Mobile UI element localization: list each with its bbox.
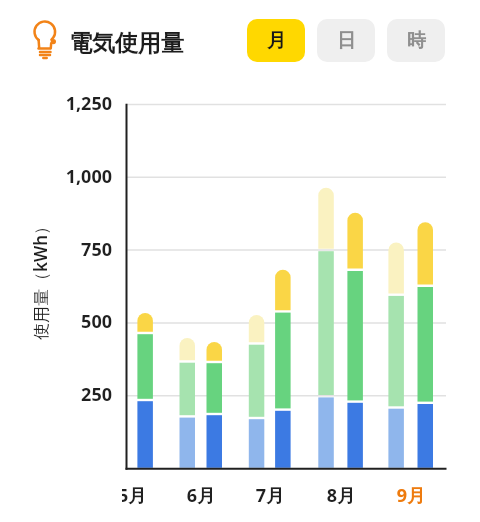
staticText: 9月: [381, 483, 441, 508]
staticText: 7月: [240, 483, 300, 508]
staticText: 6月: [171, 483, 231, 508]
staticText: 250: [42, 382, 112, 407]
staticText: 8月: [311, 483, 371, 508]
staticText: 電気使用量: [69, 29, 184, 58]
staticText: 750: [42, 237, 112, 262]
staticText: 1,250: [42, 91, 112, 116]
button[interactable]: 月: [247, 19, 305, 62]
staticText: 使用量（kWh）: [29, 217, 52, 340]
staticText: 500: [42, 309, 112, 334]
staticText: 時: [407, 29, 426, 53]
button[interactable]: 時: [387, 19, 445, 62]
staticText: 日: [337, 29, 356, 53]
staticText: 5月: [122, 483, 147, 507]
staticText: 月: [267, 29, 286, 53]
button[interactable]: 日: [317, 19, 375, 62]
staticText: 1,000: [42, 164, 112, 189]
